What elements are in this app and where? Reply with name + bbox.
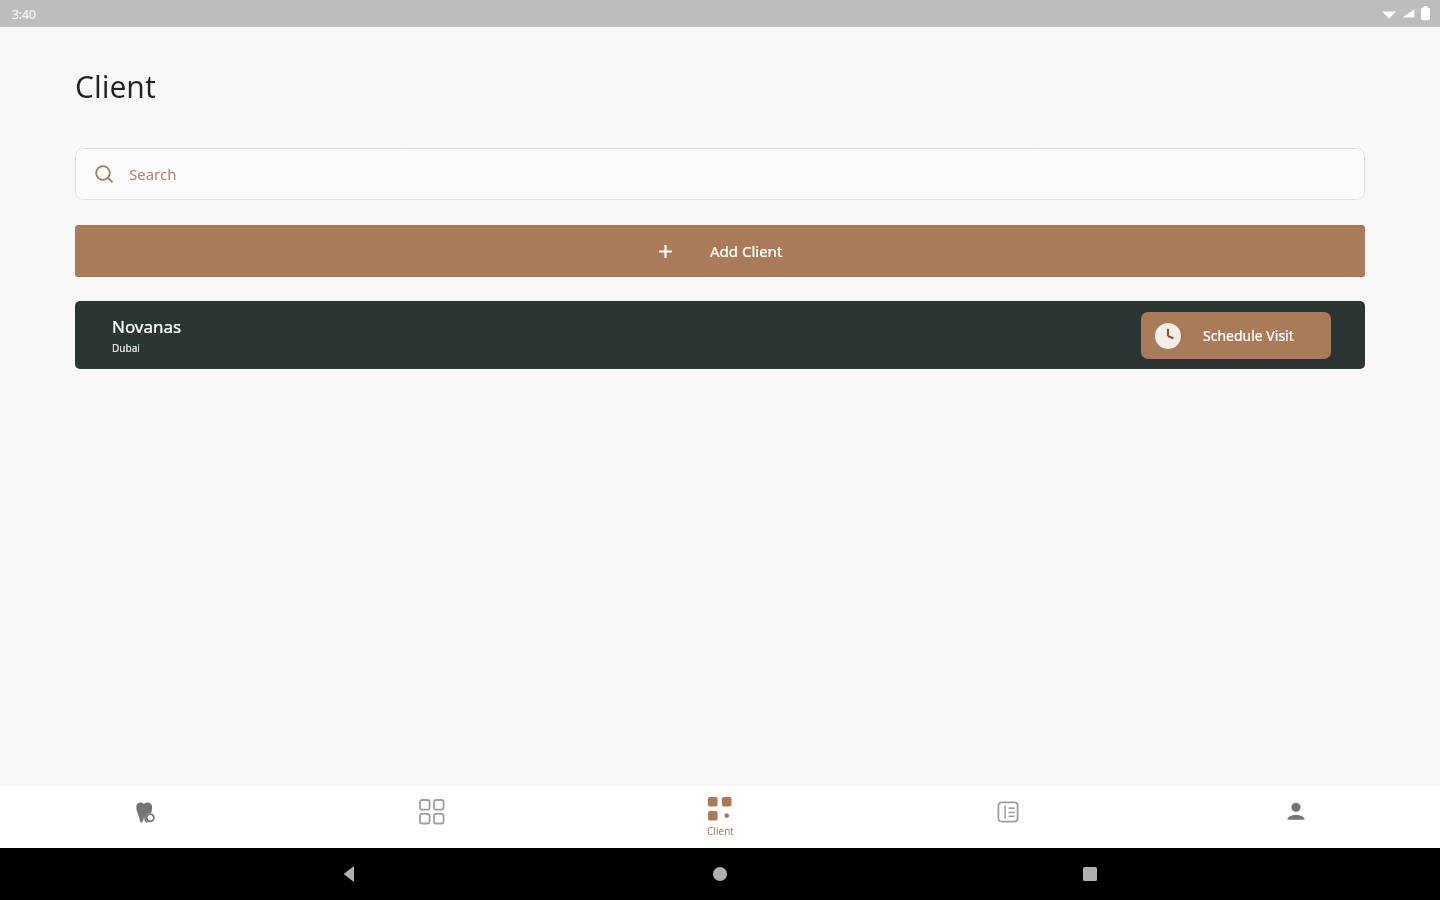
button[interactable]: Schedule Visit xyxy=(1141,312,1331,359)
button[interactable]: Novanas xyxy=(75,301,1365,369)
button[interactable]: Add Client xyxy=(75,225,1365,277)
button[interactable]: Client xyxy=(576,786,864,848)
staticText: Add Client xyxy=(710,241,783,261)
staticText: Schedule Visit xyxy=(1203,326,1294,345)
button[interactable]: Tooth xyxy=(0,786,288,848)
button[interactable]: Back xyxy=(330,854,370,894)
staticText: Dubai xyxy=(112,341,140,355)
staticText: Client xyxy=(707,824,734,838)
button[interactable]: Recent apps xyxy=(1070,854,1110,894)
staticText: Client xyxy=(75,66,156,107)
staticText: Search xyxy=(129,164,177,184)
button[interactable]: Search xyxy=(75,148,1365,200)
button[interactable]: Home xyxy=(700,854,740,894)
button[interactable]: Profile xyxy=(1152,786,1440,848)
button[interactable]: Calendar xyxy=(864,786,1152,848)
button[interactable]: Scan xyxy=(288,786,576,848)
staticText: Novanas xyxy=(112,315,182,338)
staticText: 3:40 xyxy=(12,6,36,22)
